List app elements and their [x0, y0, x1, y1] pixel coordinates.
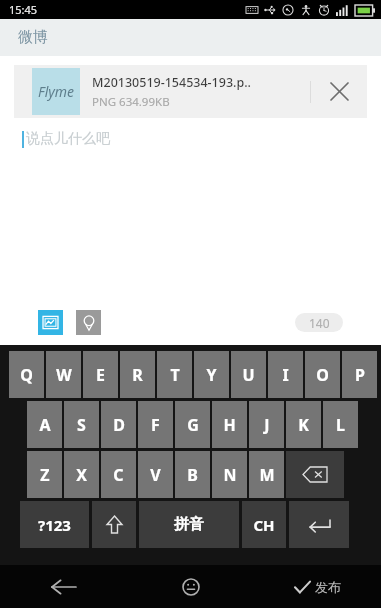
- button[interactable]: A: [27, 401, 62, 448]
- staticText: ?123: [38, 515, 71, 535]
- staticText: B: [187, 464, 198, 486]
- button[interactable]: Add image: [38, 310, 63, 335]
- staticText: 说点儿什么吧: [26, 130, 110, 148]
- staticText: E: [96, 364, 105, 386]
- staticText: F: [151, 414, 160, 436]
- button[interactable]: ?123: [20, 501, 89, 548]
- button[interactable]: G: [175, 401, 210, 448]
- staticText: N: [223, 464, 237, 486]
- staticText: O: [316, 364, 329, 386]
- staticText: R: [132, 364, 143, 386]
- staticText: K: [298, 414, 309, 436]
- staticText: 15:45: [9, 2, 38, 17]
- staticText: M20130519-154534-193.p..: [92, 74, 252, 91]
- staticText: T: [170, 364, 180, 386]
- button[interactable]: B: [175, 451, 210, 498]
- button[interactable]: X: [64, 451, 99, 498]
- button[interactable]: Backspace: [286, 451, 344, 498]
- button[interactable]: V: [138, 451, 173, 498]
- button[interactable]: I: [268, 351, 303, 398]
- button[interactable]: Y: [194, 351, 229, 398]
- staticText: A: [39, 414, 51, 436]
- staticText: C: [113, 464, 124, 486]
- button[interactable]: C: [101, 451, 136, 498]
- staticText: I: [282, 364, 289, 386]
- button[interactable]: CH: [242, 501, 286, 548]
- button[interactable]: J: [249, 401, 284, 448]
- button[interactable]: P: [342, 351, 377, 398]
- staticText: CH: [253, 515, 275, 535]
- button[interactable]: 140: [295, 313, 343, 332]
- button[interactable]: Back: [0, 565, 127, 608]
- staticText: 拼音: [174, 515, 204, 534]
- button[interactable]: L: [323, 401, 358, 448]
- button[interactable]: O: [305, 351, 340, 398]
- staticText: H: [223, 414, 236, 436]
- button[interactable]: K: [286, 401, 321, 448]
- staticText: Flyme: [38, 82, 75, 101]
- button[interactable]: 拼音: [139, 501, 239, 548]
- button[interactable]: U: [231, 351, 266, 398]
- staticText: X: [76, 464, 87, 486]
- staticText: W: [56, 364, 72, 386]
- button[interactable]: E: [83, 351, 118, 398]
- button[interactable]: F: [138, 401, 173, 448]
- button[interactable]: Add location: [76, 310, 101, 335]
- button[interactable]: R: [120, 351, 155, 398]
- staticText: 微博: [18, 28, 48, 47]
- staticText: G: [187, 414, 199, 436]
- button[interactable]: H: [212, 401, 247, 448]
- staticText: 140: [309, 315, 330, 331]
- button[interactable]: Flyme: [14, 65, 367, 118]
- button[interactable]: T: [157, 351, 192, 398]
- button[interactable]: Enter: [289, 501, 349, 548]
- button[interactable]: S: [64, 401, 99, 448]
- staticText: 发布: [315, 579, 341, 595]
- staticText: PNG 634.99KB: [92, 94, 170, 110]
- button[interactable]: Z: [27, 451, 62, 498]
- staticText: S: [77, 414, 86, 436]
- staticText: Y: [206, 364, 217, 386]
- button[interactable]: 发布: [254, 565, 381, 608]
- staticText: P: [355, 364, 365, 386]
- button[interactable]: Shift: [92, 501, 136, 548]
- staticText: J: [264, 414, 270, 436]
- button[interactable]: Remove attachment: [311, 65, 367, 118]
- staticText: Z: [40, 464, 50, 486]
- staticText: L: [336, 414, 345, 436]
- button[interactable]: W: [46, 351, 81, 398]
- staticText: Q: [20, 364, 33, 386]
- staticText: M: [259, 464, 275, 486]
- staticText: U: [242, 364, 255, 386]
- button[interactable]: Emoji: [127, 565, 254, 608]
- button[interactable]: D: [101, 401, 136, 448]
- button[interactable]: Q: [9, 351, 44, 398]
- button[interactable]: M: [249, 451, 284, 498]
- button[interactable]: N: [212, 451, 247, 498]
- staticText: V: [150, 464, 161, 486]
- staticText: D: [113, 414, 125, 436]
